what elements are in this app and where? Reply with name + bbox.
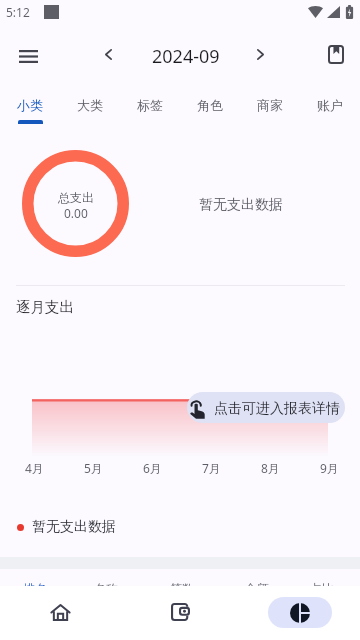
staticText: 8月: [261, 460, 280, 476]
staticText: 5:12: [6, 4, 30, 20]
button[interactable]: 小类: [0, 84, 60, 125]
staticText: 商家: [257, 97, 283, 113]
staticText: 7月: [202, 460, 221, 476]
button[interactable]: 点击可进入报表详情: [187, 392, 345, 423]
staticText: 2024-09: [152, 44, 220, 69]
staticText: 暂无支出数据: [199, 196, 283, 214]
staticText: 笔数: [170, 581, 194, 586]
button[interactable]: Bookmark: [312, 30, 360, 78]
button[interactable]: 标签: [120, 84, 180, 125]
staticText: 9月: [320, 460, 339, 476]
staticText: 角色: [197, 97, 223, 113]
button[interactable]: Reports: [240, 586, 360, 640]
staticText: 排名: [23, 581, 47, 586]
staticText: 4月: [25, 460, 44, 476]
staticText: 标签: [137, 97, 163, 113]
button[interactable]: Home: [0, 586, 120, 640]
staticText: 金额: [245, 581, 269, 586]
button[interactable]: Wallet: [120, 586, 240, 640]
staticText: 占比: [310, 581, 334, 586]
button[interactable]: Previous month: [88, 34, 128, 74]
button[interactable]: Menu: [4, 32, 52, 80]
staticText: 0.00: [64, 205, 88, 221]
staticText: 逐月支出: [16, 298, 74, 316]
button[interactable]: Next month: [240, 34, 280, 74]
staticText: 暂无支出数据: [32, 518, 116, 536]
staticText: 大类: [77, 97, 103, 113]
staticText: 小类: [17, 97, 43, 113]
staticText: 点击可进入报表详情: [214, 400, 340, 418]
button[interactable]: 账户: [300, 84, 360, 125]
button[interactable]: 角色: [180, 84, 240, 125]
staticText: 总支出: [58, 190, 94, 205]
staticText: 5月: [84, 460, 103, 476]
staticText: 6月: [143, 460, 162, 476]
button[interactable]: 商家: [240, 84, 300, 125]
staticText: 名称: [94, 581, 118, 586]
button[interactable]: 大类: [60, 84, 120, 125]
staticText: 账户: [317, 97, 343, 113]
